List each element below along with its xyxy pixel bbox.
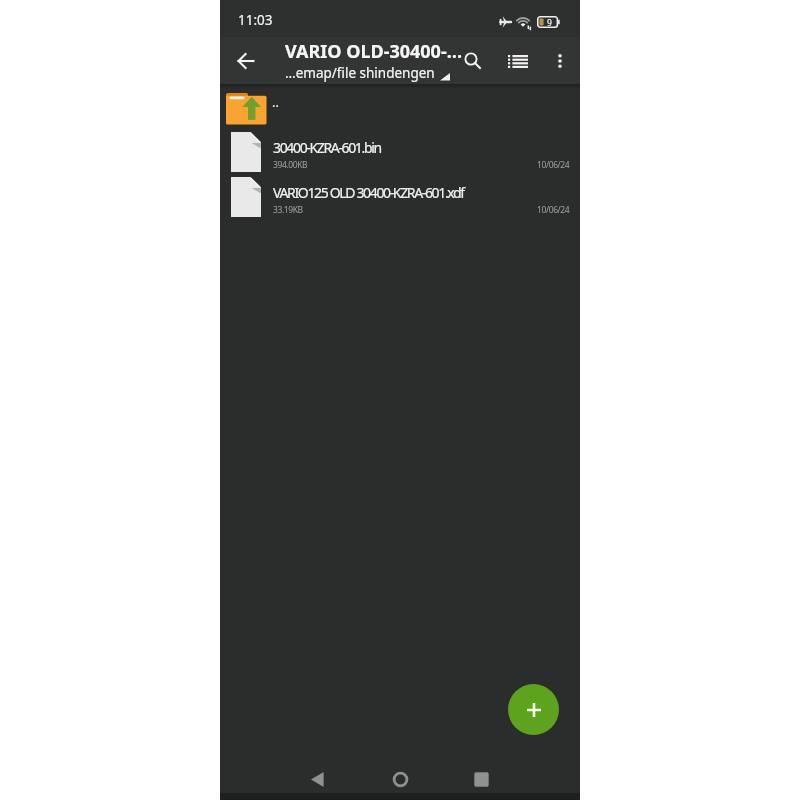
button[interactable] [508, 684, 559, 735]
staticText: 30400-KZRA-601.bin [273, 138, 381, 157]
staticText: 10/06/24 [537, 159, 570, 171]
button[interactable] [464, 762, 498, 796]
staticText: VARIO125 OLD 30400-KZRA-601.xdf [273, 183, 464, 202]
staticText: 11:03 [238, 11, 273, 29]
staticText: VARIO OLD-30400-… [285, 39, 451, 64]
staticText: 10/06/24 [537, 204, 570, 216]
button[interactable]: 30400-KZRA-601.bin [220, 129, 580, 174]
button[interactable] [300, 762, 334, 796]
button[interactable] [540, 37, 580, 84]
button[interactable] [383, 762, 417, 796]
button[interactable] [220, 37, 272, 84]
staticText: 394.00KB [273, 159, 308, 171]
staticText: .. [272, 93, 279, 111]
button[interactable] [495, 37, 540, 84]
button[interactable]: VARIO125 OLD 30400-KZRA-601.xdf [220, 174, 580, 219]
button[interactable]: .. [220, 84, 580, 129]
staticText: 33.19KB [273, 204, 303, 216]
staticText: …emap/file shindengen [285, 64, 435, 82]
staticText: 9 [547, 17, 552, 29]
button[interactable] [451, 37, 495, 84]
